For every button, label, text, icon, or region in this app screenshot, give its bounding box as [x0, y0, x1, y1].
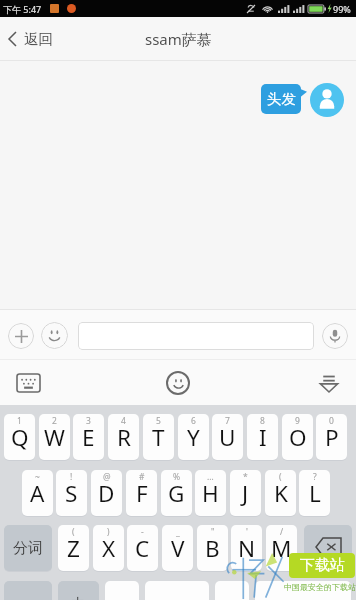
button[interactable]: /	[266, 525, 297, 571]
button[interactable]: Emoji	[41, 322, 68, 349]
button[interactable]: ?	[299, 470, 330, 516]
button[interactable]: -	[127, 525, 158, 571]
staticText: 中国最安全的下载站	[284, 582, 356, 592]
button[interactable]	[0, 17, 106, 61]
button[interactable]: …	[195, 470, 226, 516]
button[interactable]: 7	[212, 414, 243, 460]
button[interactable]: 9	[282, 414, 313, 460]
staticText: /	[280, 526, 284, 538]
button[interactable]: .	[215, 581, 249, 600]
button[interactable]: Hide keyboard	[300, 360, 356, 405]
staticText: I	[259, 422, 267, 453]
button[interactable]: 4	[108, 414, 139, 460]
staticText: 2	[52, 415, 57, 427]
staticText: '	[246, 526, 248, 538]
button[interactable]	[78, 322, 314, 350]
button[interactable]: 8	[247, 414, 278, 460]
staticText: 4	[121, 415, 126, 427]
staticText: D	[98, 478, 115, 509]
staticText: 头发	[267, 90, 296, 108]
staticText: 7	[225, 415, 230, 427]
staticText: R	[117, 422, 131, 453]
staticText: (	[279, 471, 282, 483]
button[interactable]: 5	[143, 414, 174, 460]
button[interactable]: Voice input	[322, 323, 348, 349]
staticText: M	[271, 533, 292, 564]
staticText: E	[82, 422, 95, 453]
staticText: 下载站	[300, 556, 345, 575]
button[interactable]: ~	[22, 470, 53, 516]
button[interactable]: 2	[39, 414, 70, 460]
staticText: 6	[191, 415, 196, 427]
staticText: _	[176, 526, 180, 538]
staticText: 1	[17, 415, 22, 427]
button[interactable]: '	[231, 525, 262, 571]
button[interactable]: #	[126, 470, 157, 516]
button[interactable]: )	[93, 525, 124, 571]
button[interactable]: !	[56, 470, 87, 516]
staticText: Q	[11, 422, 29, 453]
button[interactable]: (	[265, 470, 296, 516]
button[interactable]: (	[58, 525, 89, 571]
staticText: …	[207, 471, 214, 483]
staticText: L	[309, 478, 321, 509]
button[interactable]: 分词	[4, 525, 52, 571]
button[interactable]	[255, 581, 351, 600]
button[interactable]: %	[161, 470, 192, 516]
staticText: Z	[67, 533, 80, 564]
staticText: B	[205, 533, 220, 564]
staticText: 分词	[13, 539, 43, 558]
staticText: %	[173, 471, 181, 483]
button[interactable]: ,	[105, 581, 139, 600]
staticText: )	[107, 526, 110, 538]
staticText: H	[202, 478, 219, 509]
staticText: (	[72, 526, 75, 538]
button[interactable]: Emoji panel	[148, 360, 208, 405]
button[interactable]: Avatar	[310, 83, 344, 117]
staticText: A	[30, 478, 45, 509]
staticText: @	[103, 471, 111, 483]
button[interactable]: "	[197, 525, 228, 571]
staticText: -	[141, 526, 144, 538]
staticText: 99%	[333, 3, 351, 15]
button[interactable]: *	[230, 470, 261, 516]
button[interactable]: Backspace	[304, 525, 352, 571]
staticText: 下午 5:47	[3, 3, 42, 15]
staticText: F	[136, 478, 148, 509]
staticText: "	[211, 526, 215, 538]
staticText: !	[70, 471, 73, 483]
button[interactable]: Keyboard	[0, 360, 60, 405]
staticText: Y	[187, 422, 200, 453]
staticText: P	[325, 422, 339, 453]
staticText: *	[243, 471, 248, 483]
button[interactable]: _	[162, 525, 193, 571]
staticText: X	[102, 533, 116, 564]
staticText: 返回	[24, 30, 53, 48]
staticText: N	[238, 533, 256, 564]
staticText: ~	[35, 471, 40, 483]
staticText: S	[65, 478, 78, 509]
button[interactable]: 0	[316, 414, 347, 460]
staticText: K	[274, 478, 288, 509]
staticText: V	[171, 533, 185, 564]
staticText: #	[139, 471, 145, 483]
button[interactable]: Add	[8, 323, 34, 349]
button[interactable]: 头发	[261, 84, 301, 114]
button[interactable]	[145, 581, 209, 600]
staticText: C	[135, 533, 150, 564]
button[interactable]: 中	[58, 581, 99, 600]
button[interactable]: 1	[4, 414, 35, 460]
staticText: W	[44, 422, 65, 453]
button[interactable]: @	[91, 470, 122, 516]
staticText: 8	[260, 415, 265, 427]
staticText: ?	[313, 471, 317, 483]
staticText: ssam萨慕	[145, 29, 212, 49]
button[interactable]: 6	[178, 414, 209, 460]
button[interactable]: 3	[73, 414, 104, 460]
staticText: G	[168, 478, 185, 509]
staticText: T	[152, 422, 165, 453]
staticText: 5	[156, 415, 161, 427]
